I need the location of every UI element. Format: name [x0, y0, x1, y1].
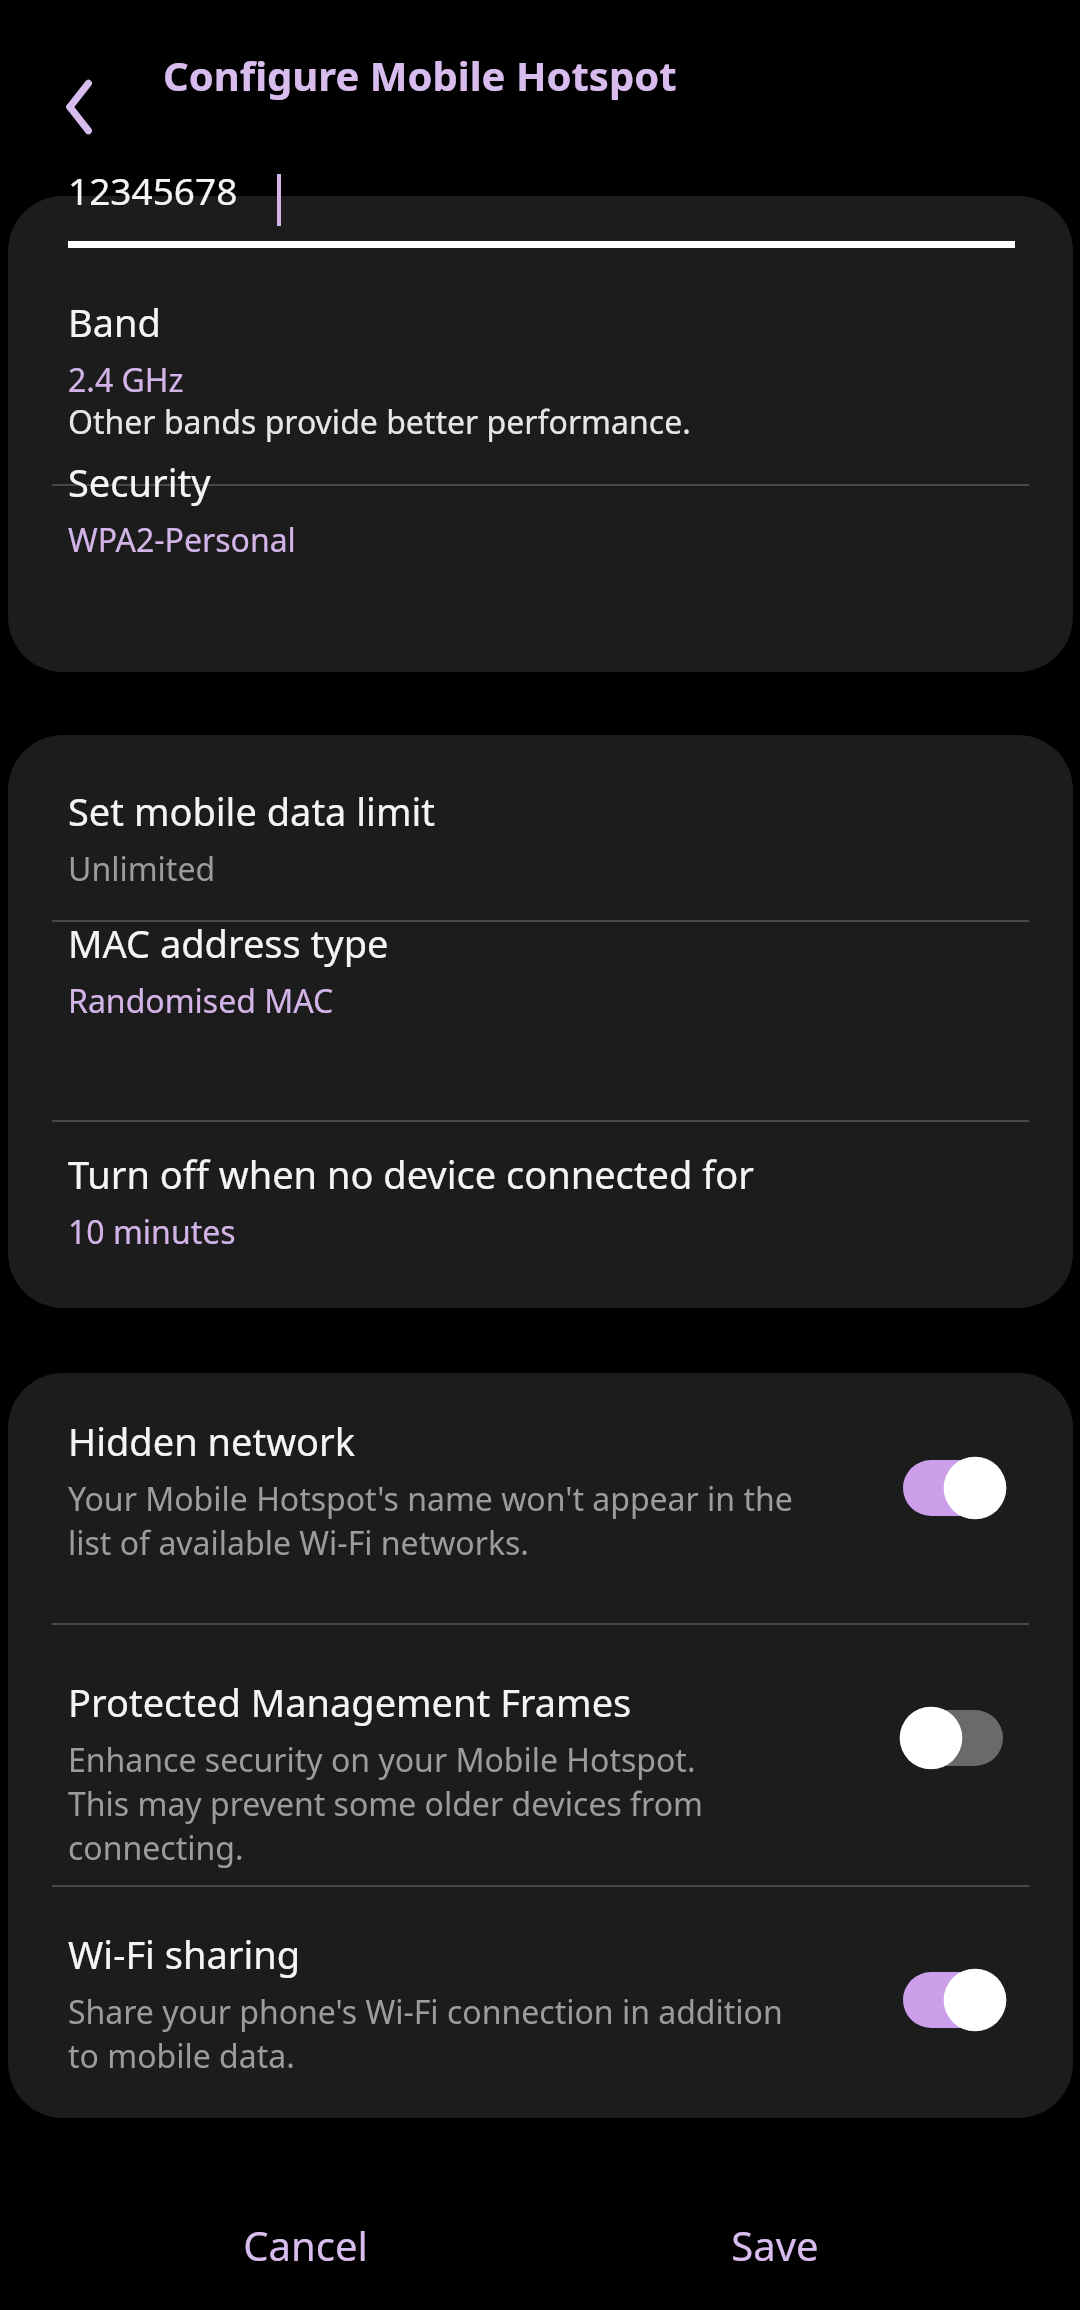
staticText: Save	[731, 2218, 819, 2272]
staticText: Randomised MAC	[68, 979, 334, 1023]
button[interactable]	[8, 280, 1073, 484]
staticText: MAC address type	[68, 917, 389, 969]
staticText: Set mobile data limit	[68, 785, 435, 837]
staticText: list of available Wi-Fi networks.	[68, 1521, 529, 1565]
button[interactable]: Save	[535, 2185, 1015, 2305]
staticText: This may prevent some older devices from	[68, 1782, 703, 1826]
staticText: Cancel	[243, 2218, 368, 2272]
button[interactable]: Protected Management Frames	[903, 1710, 1003, 1766]
button[interactable]	[8, 735, 1073, 920]
staticText: Enhance security on your Mobile Hotspot.	[68, 1738, 696, 1782]
staticText: Security	[68, 456, 211, 508]
staticText: 2.4 GHz	[68, 358, 184, 402]
staticText: to mobile data.	[68, 2034, 295, 2078]
staticText: Share your phone's Wi-Fi connection in a…	[68, 1990, 783, 2034]
button[interactable]: Wi-Fi sharing	[903, 1972, 1003, 2028]
staticText: Protected Management Frames	[68, 1676, 632, 1728]
button[interactable]	[8, 486, 1073, 672]
staticText: WPA2-Personal	[68, 518, 296, 562]
staticText: connecting.	[68, 1826, 244, 1870]
button[interactable]	[8, 1122, 1073, 1308]
button[interactable]	[8, 1373, 1073, 1623]
button[interactable]	[8, 922, 1073, 1120]
button[interactable]: Cancel	[65, 2185, 545, 2305]
button[interactable]: Hidden network	[903, 1460, 1003, 1516]
button[interactable]	[8, 1625, 1073, 1885]
staticText: Configure Mobile Hotspot	[163, 48, 677, 102]
staticText: Hidden network	[68, 1415, 355, 1467]
staticText: 10 minutes	[68, 1210, 236, 1254]
staticText: Turn off when no device connected for	[68, 1148, 755, 1200]
staticText: Your Mobile Hotspot's name won't appear …	[68, 1477, 793, 1521]
staticText: Unlimited	[68, 847, 216, 891]
staticText: Other bands provide better performance.	[68, 400, 691, 444]
button[interactable]	[8, 1887, 1073, 2118]
staticText: Wi-Fi sharing	[68, 1928, 301, 1980]
staticText: 12345678	[68, 165, 238, 215]
staticText: Band	[68, 296, 161, 348]
button[interactable]: Back	[50, 74, 112, 140]
